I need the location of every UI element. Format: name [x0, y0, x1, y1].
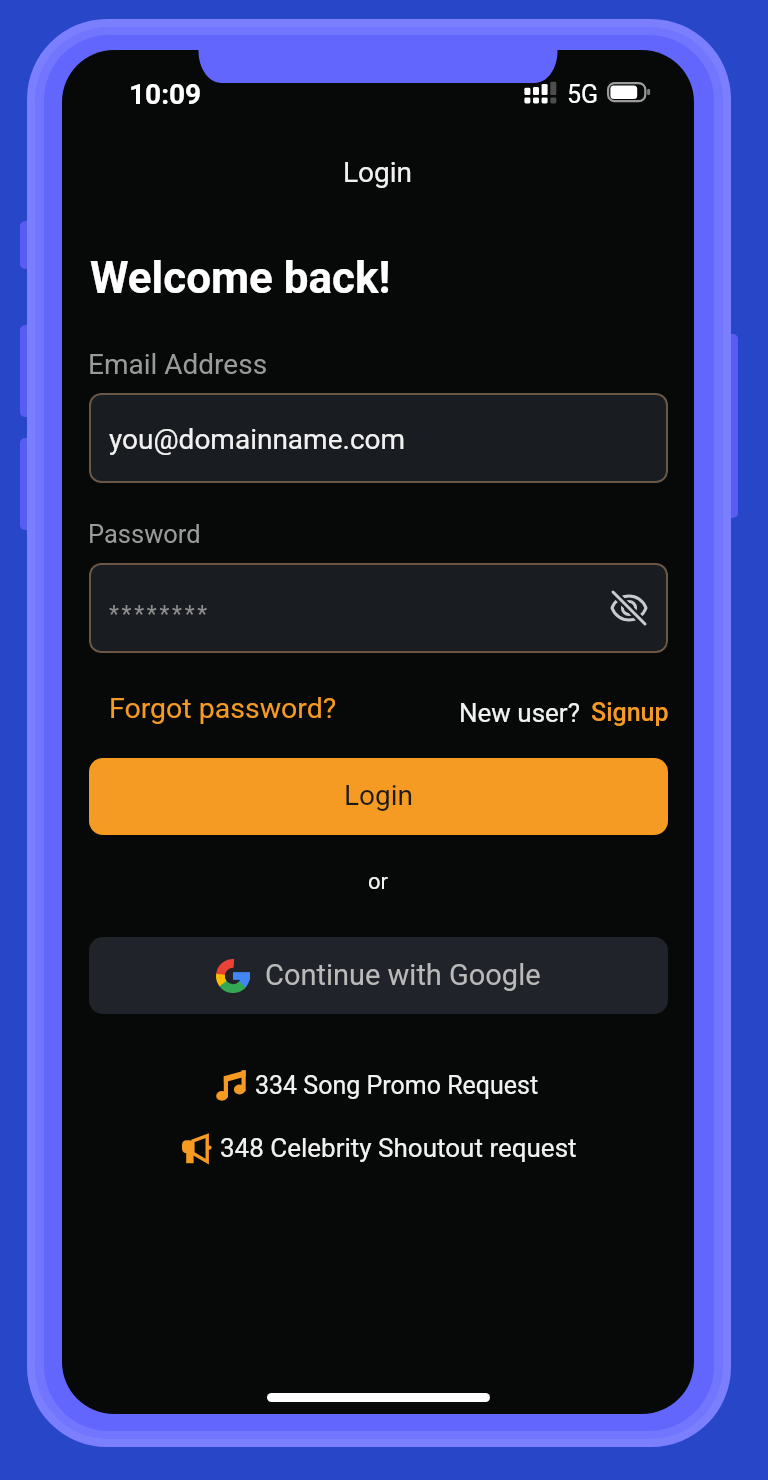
- button[interactable]: you@domainname.com: [89, 393, 668, 483]
- button[interactable]: Continue with Google: [89, 937, 668, 1014]
- button[interactable]: Login: [89, 758, 668, 835]
- staticText: Forgot password?: [109, 692, 337, 725]
- staticText: Login: [343, 156, 413, 189]
- staticText: 10:09: [129, 78, 202, 111]
- staticText: Welcome back!: [90, 252, 391, 304]
- staticText: Login: [344, 779, 414, 812]
- staticText: New user?: [459, 698, 580, 728]
- staticText: 5G: [567, 80, 599, 109]
- staticText: you@domainname.com: [109, 423, 406, 456]
- button[interactable]: Forgot password?: [109, 692, 337, 725]
- staticText: Password: [88, 519, 201, 549]
- staticText: ********: [109, 601, 210, 628]
- button[interactable]: 334 Song Promo Request: [216, 1070, 539, 1101]
- staticText: or: [368, 869, 389, 895]
- button[interactable]: Show password: [606, 585, 652, 631]
- staticText: Signup: [591, 698, 669, 727]
- staticText: 334 Song Promo Request: [255, 1071, 539, 1100]
- staticText: Email Address: [88, 348, 268, 381]
- staticText: 348 Celebrity Shoutout request: [220, 1133, 577, 1163]
- staticText: Continue with Google: [265, 958, 541, 992]
- other: Toggle password visibility: [606, 585, 652, 631]
- button[interactable]: Signup: [591, 698, 669, 727]
- button[interactable]: ********: [89, 563, 668, 653]
- button[interactable]: 348 Celebrity Shoutout request: [182, 1133, 577, 1163]
